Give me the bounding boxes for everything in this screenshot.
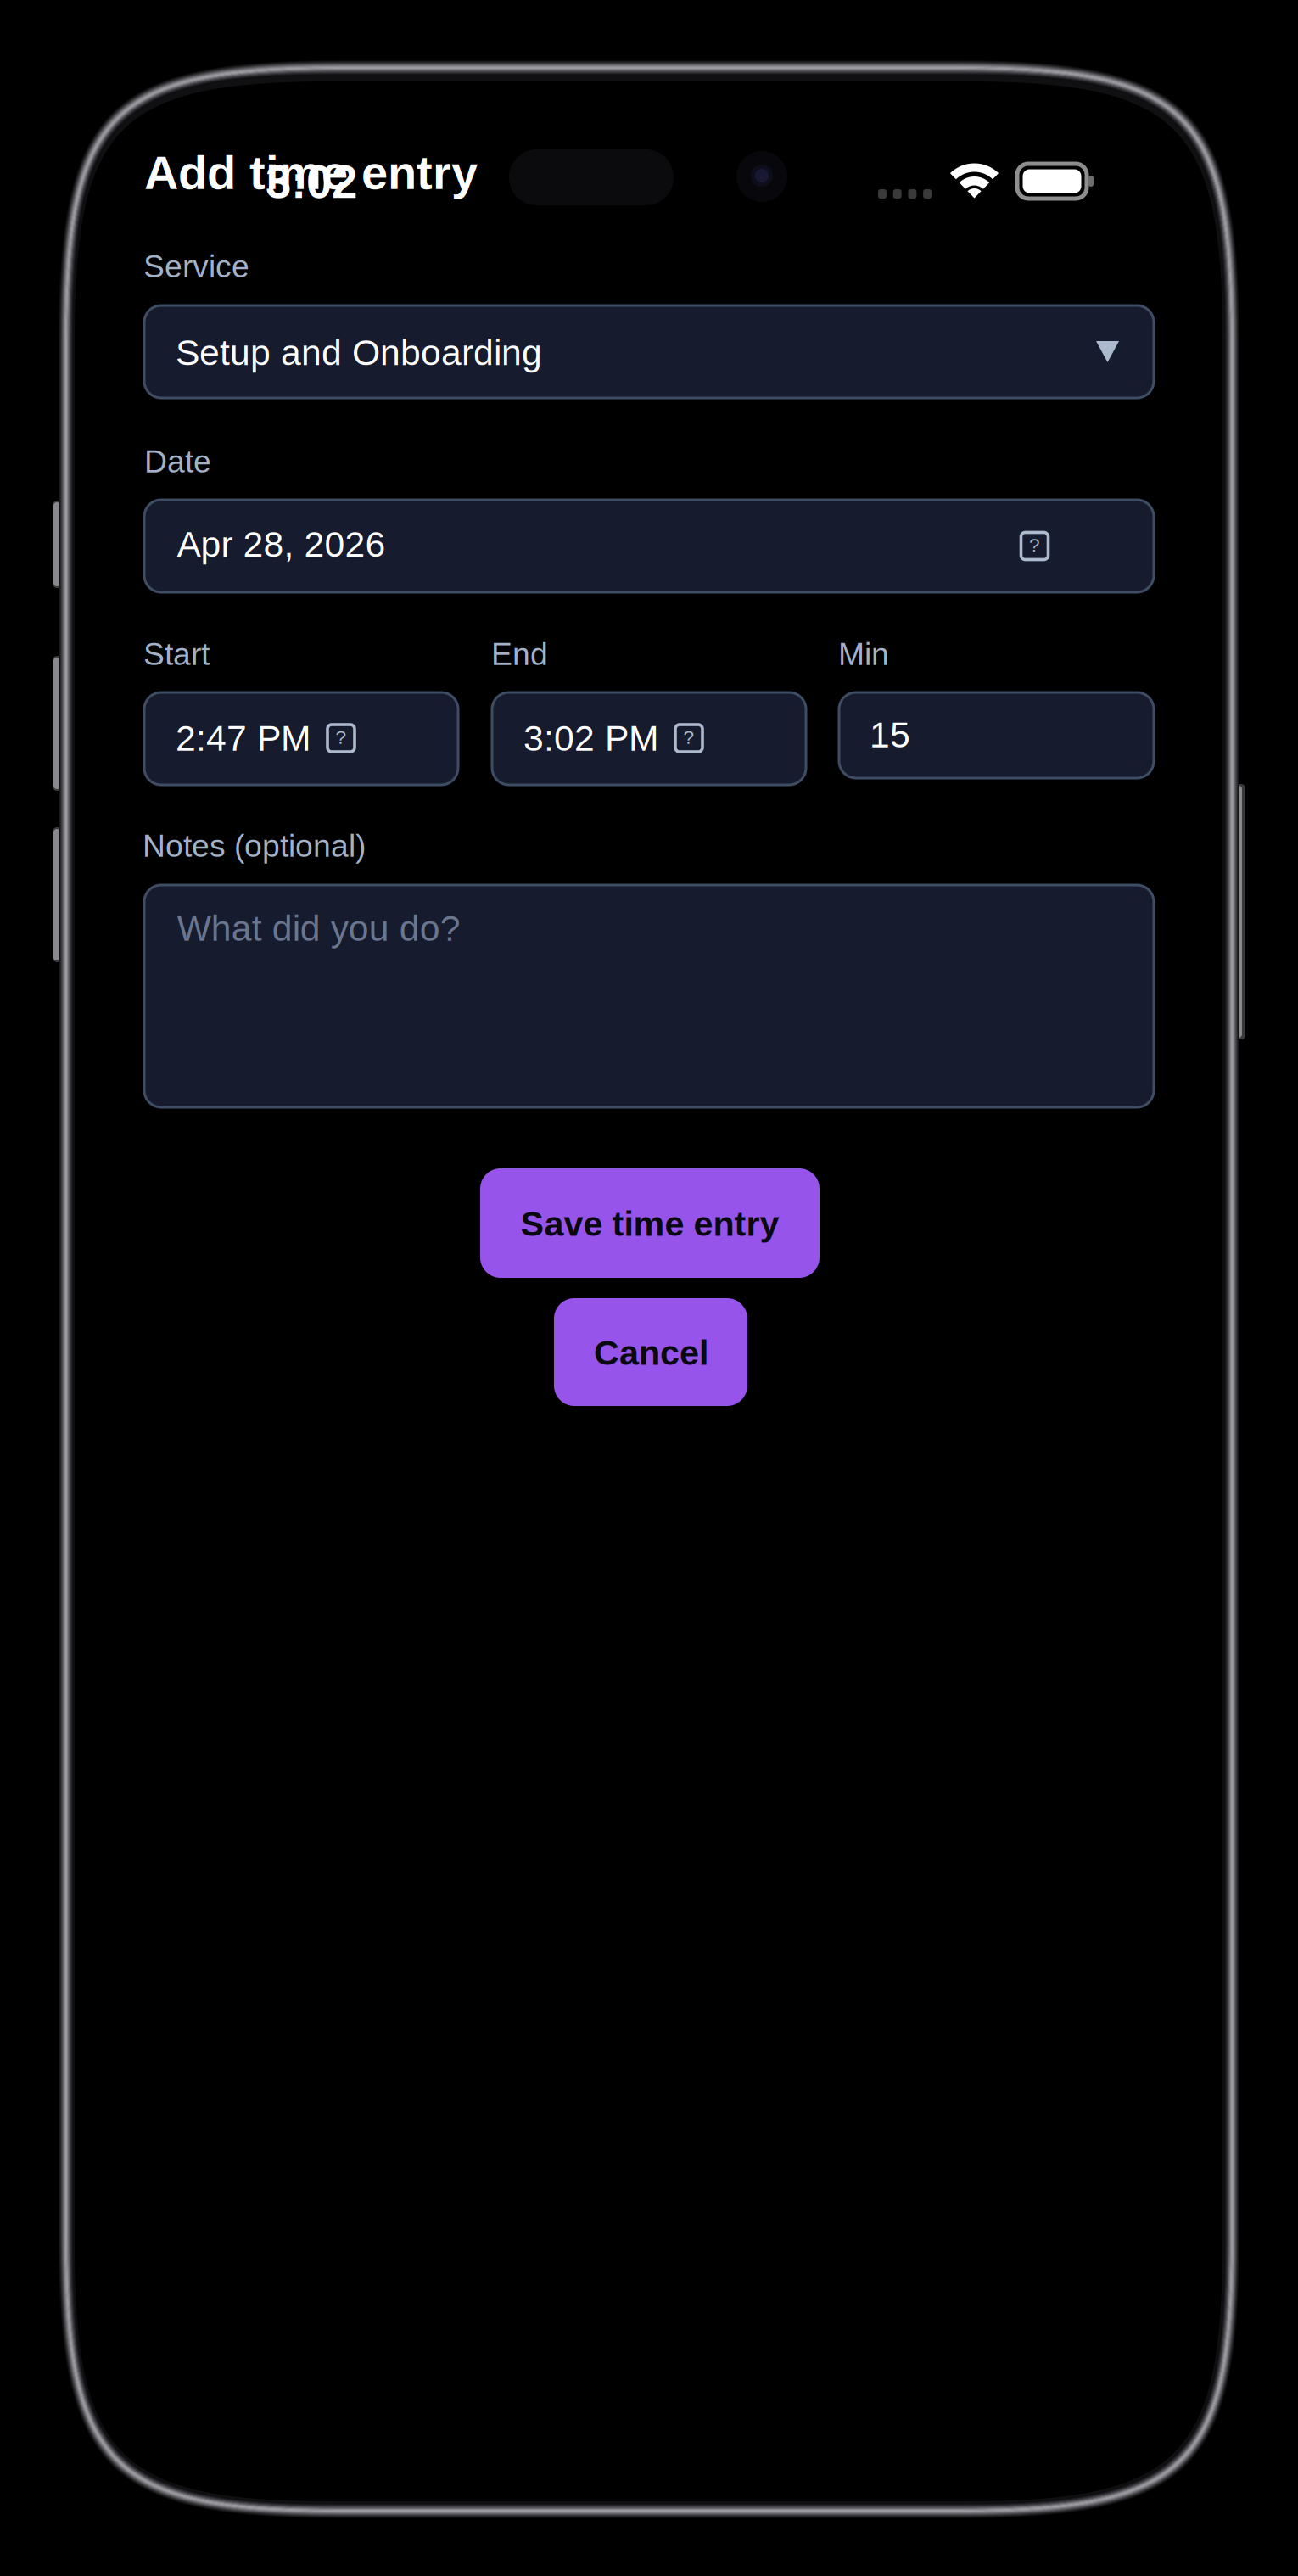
button[interactable]: Apr 28, 2026 — [144, 500, 1154, 592]
button[interactable]: 3:02 PM — [492, 692, 806, 785]
button[interactable]: 2:47 PM — [144, 692, 458, 785]
staticText: 2:47 PM — [176, 718, 311, 758]
staticText: Service — [143, 249, 249, 284]
staticText: Cancel — [594, 1333, 708, 1372]
staticText: ? — [683, 727, 694, 748]
button[interactable]: 15 — [839, 692, 1154, 778]
staticText: Add time entry — [144, 146, 478, 199]
staticText: ? — [1029, 534, 1040, 556]
staticText: 15 — [870, 714, 910, 755]
staticText: Setup and Onboarding — [176, 332, 542, 373]
staticText: ? — [336, 727, 347, 748]
button[interactable]: Setup and Onboarding — [144, 305, 1154, 398]
button[interactable]: What did you do? — [144, 885, 1154, 1107]
staticText: Start — [143, 636, 210, 672]
button[interactable]: Cancel — [554, 1298, 747, 1406]
staticText: Notes (optional) — [143, 828, 366, 864]
staticText: Apr 28, 2026 — [177, 524, 386, 564]
staticText: 3:02 — [266, 156, 357, 208]
button[interactable]: Save time entry — [480, 1168, 820, 1278]
staticText: End — [491, 636, 548, 672]
staticText: What did you do? — [177, 908, 460, 948]
staticText: Min — [838, 636, 889, 672]
staticText: Save time entry — [520, 1204, 779, 1243]
staticText: 3:02 PM — [523, 718, 659, 758]
staticText: Date — [144, 444, 211, 479]
